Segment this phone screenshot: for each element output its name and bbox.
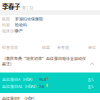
- staticText: 科室: [2, 22, 10, 28]
- staticText: 血红蛋白A2（HbA2）: [2, 83, 39, 89]
- staticText: 罗湖妇幼保健院: [15, 16, 43, 22]
- staticText: g/L: [88, 83, 94, 89]
- staticText: 检查项目: [2, 45, 18, 50]
- staticText: 男 | 32: [22, 5, 33, 10]
- staticText: 血红蛋白F: [2, 96, 20, 100]
- staticText: 医院: [2, 16, 10, 22]
- staticText: 临床诊断: [2, 28, 18, 34]
- staticText: 血红蛋白A（HbA）: [2, 77, 35, 82]
- staticText: 孕产: [15, 28, 23, 34]
- staticText: 结果: [42, 45, 50, 50]
- staticText: （HbF）: [22, 96, 37, 100]
- staticText: 95.8: [39, 77, 46, 82]
- staticText: 单位: [88, 45, 96, 50]
- staticText: 参考值: [57, 45, 69, 50]
- staticText: 检验科: [15, 22, 27, 28]
- staticText: （惠民免费“地贫初筛”血红蛋白电泳全自动仪器法）: [2, 55, 86, 67]
- staticText: g/L: [88, 77, 94, 82]
- staticText: 李春子: [2, 2, 20, 11]
- staticText: 2.6: [39, 83, 44, 89]
